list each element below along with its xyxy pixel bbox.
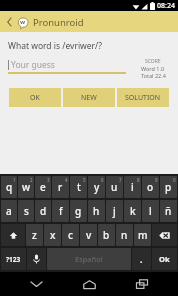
staticText: l [149, 204, 152, 218]
button[interactable]: t [70, 176, 87, 198]
button[interactable]: q [1, 176, 17, 198]
button[interactable]: Voice input [27, 248, 46, 270]
staticText: t [77, 180, 81, 194]
button[interactable]: Ok [152, 248, 177, 270]
staticText: u [111, 180, 118, 194]
staticText: i [131, 180, 134, 194]
staticText: m [138, 228, 148, 242]
staticText: ?123 [6, 255, 21, 264]
staticText: What word is /evriwer/? [8, 40, 102, 52]
staticText: v [86, 228, 92, 242]
staticText: d [40, 204, 47, 218]
staticText: Your guess [11, 59, 55, 71]
button[interactable]: Home [72, 272, 106, 296]
button[interactable]: u [106, 176, 123, 198]
button[interactable]: v [80, 224, 97, 246]
button[interactable]: s [18, 200, 34, 222]
button[interactable]: w [18, 176, 34, 198]
staticText: 1 [13, 177, 16, 183]
staticText: z [32, 228, 37, 242]
button[interactable]: ñ [160, 200, 177, 222]
staticText: a [6, 204, 12, 218]
button[interactable]: Hide keyboard [19, 272, 53, 296]
staticText: f [59, 204, 63, 218]
button[interactable]: j [106, 200, 123, 222]
staticText: 5 [83, 177, 86, 183]
button[interactable]: x [44, 224, 61, 246]
staticText: x [50, 228, 56, 242]
button[interactable]: m [134, 224, 151, 246]
button[interactable]: r [52, 176, 69, 198]
button[interactable]: . [132, 248, 151, 270]
staticText: w [20, 18, 26, 26]
staticText: Pronunroid [33, 16, 84, 29]
button[interactable]: Recent apps [125, 272, 159, 296]
staticText: 6 [101, 177, 104, 183]
button[interactable]: c [62, 224, 79, 246]
staticText: 0 [173, 177, 176, 183]
staticText: NEW [81, 93, 97, 103]
button[interactable]: Español [47, 248, 131, 270]
staticText: q [6, 180, 13, 194]
staticText: j [113, 204, 116, 218]
staticText: 8 [137, 177, 140, 183]
button[interactable]: y [88, 176, 105, 198]
button[interactable]: n [116, 224, 133, 246]
staticText: b [103, 228, 110, 242]
button[interactable]: h [88, 200, 105, 222]
button[interactable]: f [52, 200, 69, 222]
button[interactable]: a [1, 200, 17, 222]
staticText: Word 1.0 [141, 65, 165, 72]
staticText: r [58, 180, 63, 194]
staticText: 08:24 [157, 1, 175, 11]
staticText: s [24, 204, 29, 218]
button[interactable]: ?123 [1, 248, 26, 270]
staticText: c [68, 228, 73, 242]
staticText: e [40, 180, 46, 194]
staticText: n [121, 228, 128, 242]
button[interactable]: OK [9, 88, 61, 107]
staticText: o [147, 180, 154, 194]
staticText: g [75, 204, 82, 218]
staticText: 9 [155, 177, 158, 183]
button[interactable]: e [35, 176, 51, 198]
button[interactable]: Navigate up [2, 15, 16, 29]
staticText: h [93, 204, 100, 218]
staticText: k [130, 204, 136, 218]
button[interactable]: k [124, 200, 141, 222]
button[interactable]: i [124, 176, 141, 198]
staticText: Ok [159, 254, 170, 264]
button[interactable]: SOLUTION [117, 88, 169, 107]
staticText: . [140, 253, 143, 265]
button[interactable]: Backspace [152, 224, 177, 246]
staticText: p [165, 180, 172, 194]
button[interactable]: l [142, 200, 159, 222]
staticText: OK [30, 93, 40, 103]
button[interactable]: Shift [1, 224, 25, 246]
button[interactable]: p [160, 176, 177, 198]
button[interactable]: g [70, 200, 87, 222]
button[interactable]: z [26, 224, 43, 246]
staticText: 2 [30, 177, 33, 183]
staticText: y [94, 180, 100, 194]
staticText: 3 [47, 177, 50, 183]
staticText: 7 [119, 177, 122, 183]
button[interactable]: NEW [63, 88, 115, 107]
button[interactable]: d [35, 200, 51, 222]
staticText: Total 22.4 [141, 72, 166, 79]
button[interactable]: b [98, 224, 115, 246]
button[interactable]: o [142, 176, 159, 198]
staticText: 4 [65, 177, 68, 183]
staticText: SOLUTION [125, 93, 161, 103]
button[interactable]: Your guess [8, 58, 126, 72]
staticText: w [22, 180, 31, 194]
staticText: SCORE [145, 58, 161, 65]
staticText: Español [75, 254, 103, 264]
staticText: ñ [165, 204, 172, 218]
